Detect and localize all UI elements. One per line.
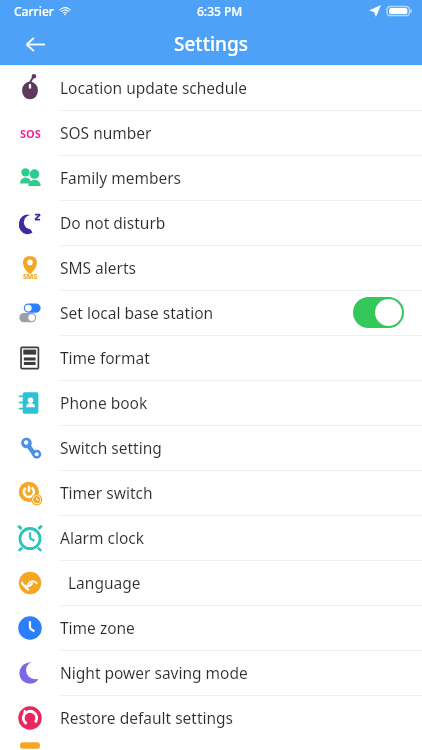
button[interactable]: SOS (0, 110, 422, 155)
button[interactable]: Night power saving mode (0, 650, 422, 695)
button[interactable]: Language (0, 560, 422, 605)
staticText: Location update schedule (60, 77, 247, 98)
staticText: Language (68, 572, 141, 593)
staticText: Carrier (14, 3, 54, 19)
staticText: SOS number (60, 122, 152, 143)
staticText: Alarm clock (60, 527, 145, 548)
staticText: Timer switch (60, 482, 153, 503)
button[interactable]: Toggle (353, 297, 404, 328)
staticText: SOS (20, 126, 41, 141)
button[interactable]: Family members (0, 155, 422, 200)
staticText: Phone book (60, 392, 148, 413)
button[interactable]: Time format (0, 335, 422, 380)
button[interactable]: Restore default settings (0, 695, 422, 740)
button[interactable]: Alarm clock (0, 515, 422, 560)
button[interactable]: Do not disturb (0, 200, 422, 245)
staticText: Restore default settings (60, 707, 234, 728)
staticText: SMS alerts (60, 257, 136, 278)
staticText: Set local base station (60, 302, 214, 323)
button[interactable]: Time zone (0, 605, 422, 650)
staticText: Night power saving mode (60, 662, 248, 683)
staticText: 6:35 PM (197, 3, 243, 19)
staticText: Do not disturb (60, 212, 166, 233)
button[interactable]: SMS (0, 245, 422, 290)
button[interactable]: Switch setting (0, 425, 422, 470)
button[interactable]: Location update schedule (0, 65, 422, 110)
button[interactable]: Back (14, 23, 56, 65)
staticText: SMS (23, 272, 38, 282)
staticText: Time zone (60, 617, 135, 638)
button[interactable]: Timer switch (0, 470, 422, 515)
staticText: Settings (174, 31, 248, 57)
button[interactable]: Phone book (0, 380, 422, 425)
staticText: Time format (60, 347, 150, 368)
button[interactable]: Set local base station (0, 290, 422, 335)
staticText: Family members (60, 167, 181, 188)
staticText: Switch setting (60, 437, 162, 458)
